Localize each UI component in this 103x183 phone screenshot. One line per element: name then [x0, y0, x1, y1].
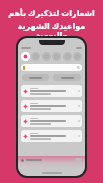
button[interactable]	[21, 100, 82, 112]
button[interactable]	[21, 115, 82, 127]
button[interactable]	[21, 130, 82, 142]
button[interactable]: Category 2	[42, 52, 51, 61]
button[interactable]: Category 1	[31, 52, 40, 61]
staticText: اشعارات لتذكيرك بأهم	[8, 7, 95, 18]
staticText: مواعيدك الشهرية واليومية	[6, 20, 97, 40]
button[interactable]	[53, 74, 81, 81]
button[interactable]: All reminders	[21, 52, 30, 61]
button[interactable]	[21, 64, 82, 71]
button[interactable]: Category 3	[52, 52, 61, 61]
button[interactable]	[22, 74, 49, 81]
button[interactable]: Category 5	[73, 52, 82, 61]
button[interactable]	[21, 85, 82, 97]
button[interactable]: Category 4	[63, 52, 72, 61]
button[interactable]: Add reminder	[75, 158, 82, 162]
